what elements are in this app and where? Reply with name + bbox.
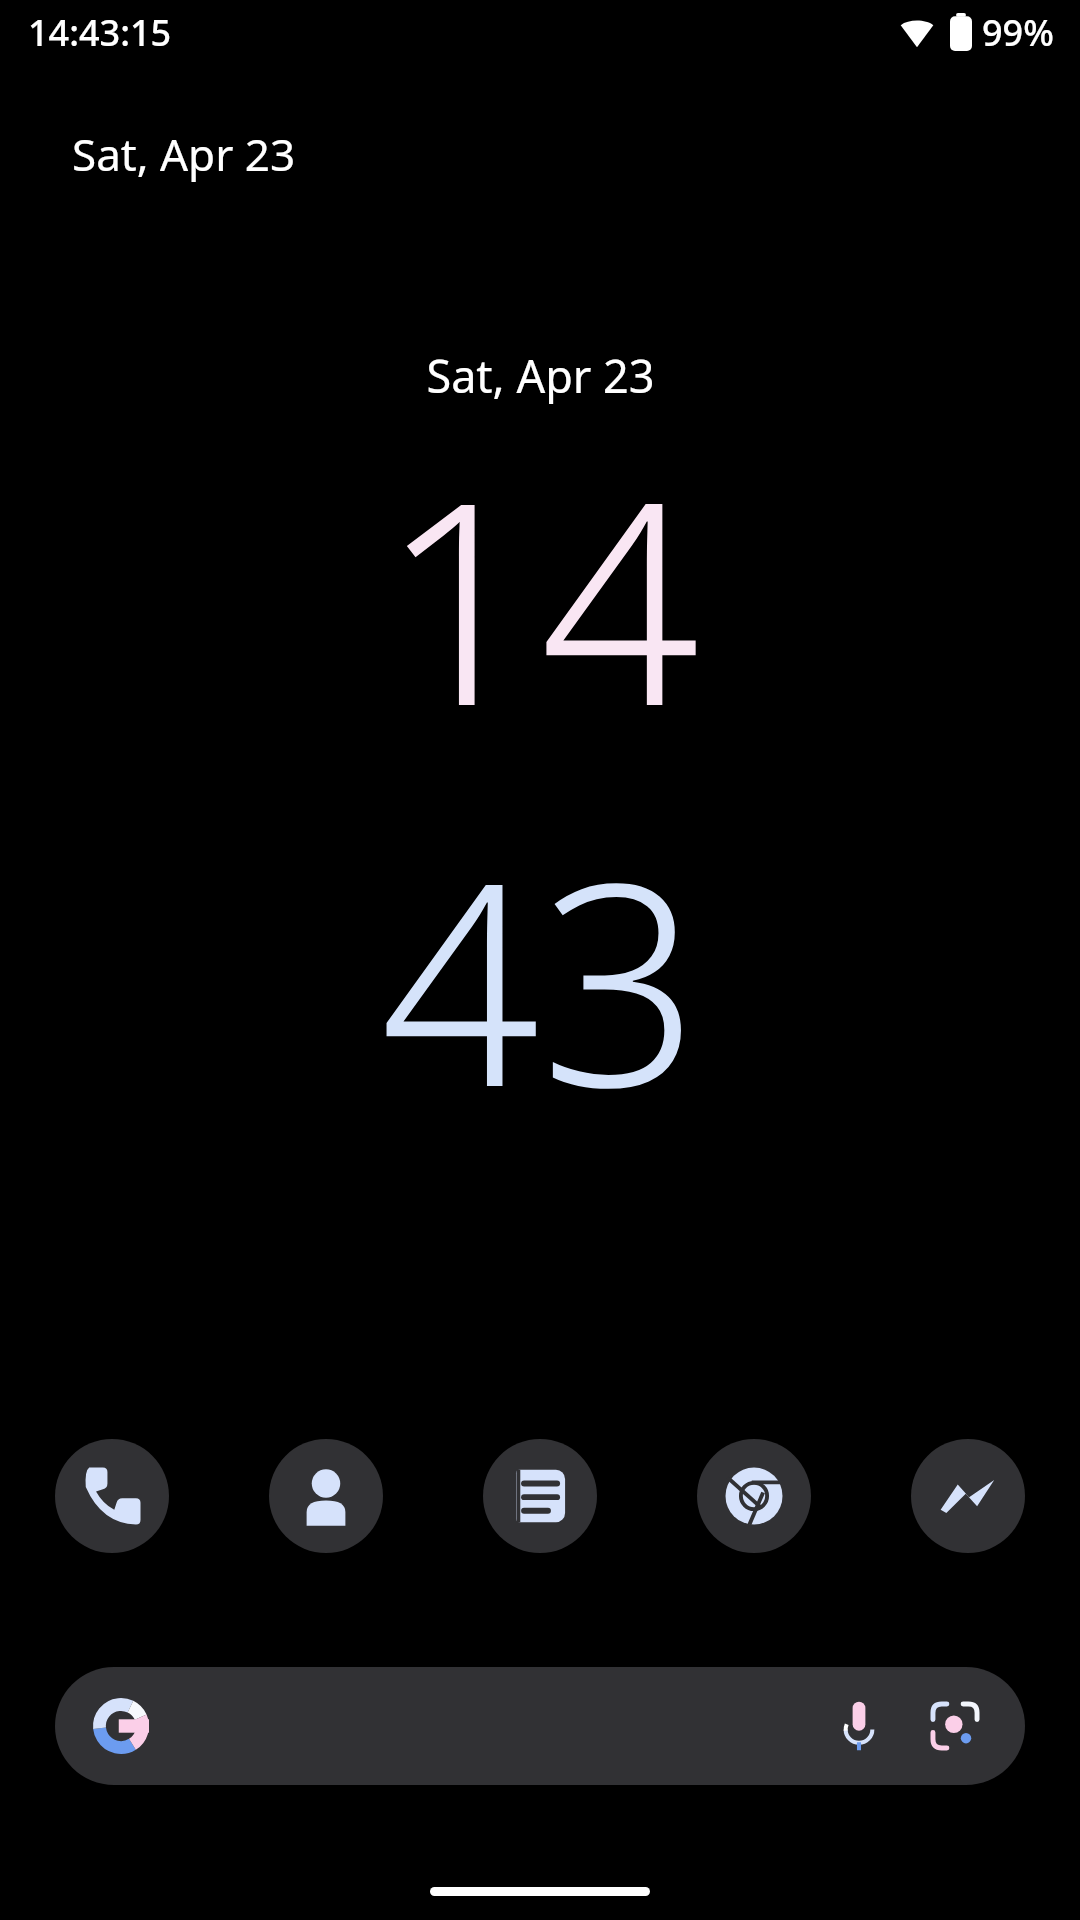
button[interactable]: Voice search xyxy=(55,1667,1025,1785)
staticText: 99% xyxy=(982,8,1054,57)
staticText: 14:43:15 xyxy=(28,8,172,57)
button[interactable]: Contacts xyxy=(269,1439,383,1553)
staticText: Sat, Apr 23 xyxy=(426,345,655,406)
button[interactable]: Voice search xyxy=(811,1678,907,1774)
button[interactable]: Messages xyxy=(483,1439,597,1553)
staticText: 43 xyxy=(380,787,700,1168)
button[interactable]: Google Lens xyxy=(907,1678,1003,1774)
button[interactable]: Messenger xyxy=(911,1439,1025,1553)
button[interactable]: Sat, Apr 23 xyxy=(72,124,296,184)
button[interactable]: Sat, Apr 23 xyxy=(0,345,1080,1168)
button[interactable]: Phone xyxy=(55,1439,169,1553)
staticText: 14 xyxy=(380,406,700,787)
button[interactable]: Chrome xyxy=(697,1439,811,1553)
staticText: Sat, Apr 23 xyxy=(72,124,296,184)
